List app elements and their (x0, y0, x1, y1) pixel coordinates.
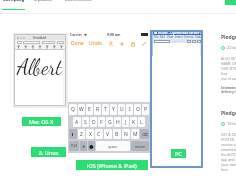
staticText: I (129, 106, 131, 113)
staticText: O (136, 106, 140, 113)
button[interactable]: H (114, 117, 121, 127)
button[interactable]: Insert (175, 35, 183, 39)
staticText: J (125, 119, 127, 126)
button[interactable]: W (78, 104, 85, 115)
staticText: T (104, 106, 107, 113)
staticText: space (108, 144, 118, 149)
button[interactable]: View (167, 35, 174, 39)
button[interactable]: & Linux (31, 147, 66, 157)
staticText: H (116, 119, 120, 126)
button[interactable]: R (94, 104, 101, 115)
staticText: Carrier (70, 32, 83, 37)
staticText: M (133, 131, 138, 138)
button[interactable]: U (118, 104, 125, 115)
staticText: Pledge $50 or more (221, 110, 236, 117)
staticText: Y (112, 106, 115, 113)
staticText: W (79, 106, 84, 113)
staticText: ⬤ (89, 144, 94, 149)
staticText: ALSO GET YOUR NAME ON OUR SITE and get f… (221, 56, 236, 81)
staticText: Updates (33, 0, 53, 3)
button[interactable]: Q (69, 104, 77, 115)
button[interactable]: ⊕ (80, 141, 87, 151)
button[interactable]: Edit (160, 35, 166, 39)
button[interactable]: C (95, 129, 103, 139)
staticText: & Linux (39, 149, 59, 156)
button[interactable]: N (122, 129, 130, 139)
staticText: iOS (iPhone & iPad) (87, 162, 137, 169)
button[interactable]: ⌫ (140, 129, 149, 139)
button[interactable]: Pledge $50 or more (221, 110, 236, 177)
button[interactable]: Lock (129, 40, 136, 47)
button[interactable]: Done (71, 40, 84, 47)
button[interactable]: T (102, 104, 109, 115)
button[interactable]: File (154, 35, 159, 39)
button[interactable]: Undo (89, 40, 102, 47)
button[interactable]: Table (195, 35, 202, 39)
button[interactable]: V (104, 129, 112, 139)
staticText: Mac OS X (29, 118, 54, 125)
staticText: P (144, 106, 148, 113)
staticText: Z (80, 131, 83, 138)
button[interactable]: Z (78, 129, 85, 139)
button[interactable]: G (106, 117, 113, 127)
button[interactable]: B (113, 129, 121, 139)
staticText: N (124, 131, 128, 138)
staticText: E (88, 106, 91, 113)
staticText: Campaign (2, 0, 25, 3)
button[interactable]: ⬤ (88, 141, 95, 151)
button[interactable]: A (73, 117, 81, 127)
button[interactable]: Updates (33, 0, 53, 9)
button[interactable]: L (138, 117, 145, 127)
button[interactable]: Format (184, 35, 194, 39)
button[interactable]: Signature (107, 40, 114, 47)
staticText: G (108, 119, 112, 126)
staticText: Q (71, 106, 75, 113)
button[interactable]: return (131, 141, 149, 151)
button[interactable]: J (122, 117, 129, 127)
button[interactable]: X (86, 129, 94, 139)
staticText: Comments (8) (62, 0, 94, 3)
staticText: U (120, 106, 124, 113)
staticText: A (75, 119, 79, 126)
staticText: ⊕ (82, 144, 86, 149)
staticText: .?123 (70, 144, 78, 148)
staticText: PC (175, 150, 182, 157)
button[interactable]: E (86, 104, 93, 115)
button[interactable]: ⬆ (69, 129, 77, 139)
button[interactable]: Draw (140, 40, 147, 47)
staticText: GET A SIGNED POSTER, receive our newslet… (221, 132, 236, 172)
button[interactable]: F (98, 117, 105, 127)
button[interactable]: M (131, 129, 139, 139)
button[interactable]: P (142, 104, 149, 115)
staticText: F (100, 119, 103, 126)
staticText: ⌫ (142, 132, 148, 137)
staticText: 9:08 am (107, 32, 121, 37)
staticText: X (89, 131, 92, 138)
button[interactable]: .?123 (69, 141, 79, 151)
staticText: ⬆ (71, 132, 75, 137)
button[interactable]: Pledge $25 or more (221, 34, 236, 94)
button[interactable]: O (134, 104, 141, 115)
button[interactable]: I (126, 104, 133, 115)
staticText: S (84, 119, 87, 126)
button[interactable]: iOS (iPhone & iPad) (76, 160, 148, 170)
button[interactable]: Y (110, 104, 117, 115)
button[interactable]: Campaign (2, 0, 25, 10)
button[interactable]: K (130, 117, 137, 127)
button[interactable]: Mac OS X (22, 117, 61, 126)
button[interactable]: space (96, 141, 130, 151)
button[interactable]: S (82, 117, 89, 127)
staticText: Hi.odt - OpenOffice Writer (158, 31, 200, 35)
button[interactable]: D (90, 117, 97, 127)
staticText: return (135, 144, 146, 149)
button[interactable]: PC (171, 149, 186, 158)
staticText: 22 backers (227, 45, 236, 50)
button[interactable]: Add (118, 40, 125, 47)
staticText: R (96, 106, 100, 113)
staticText: V (106, 131, 110, 138)
staticText: C (97, 131, 101, 138)
staticText: Untitled (33, 36, 47, 40)
button[interactable]: Comments (8) (62, 0, 94, 9)
staticText: L (140, 119, 143, 126)
